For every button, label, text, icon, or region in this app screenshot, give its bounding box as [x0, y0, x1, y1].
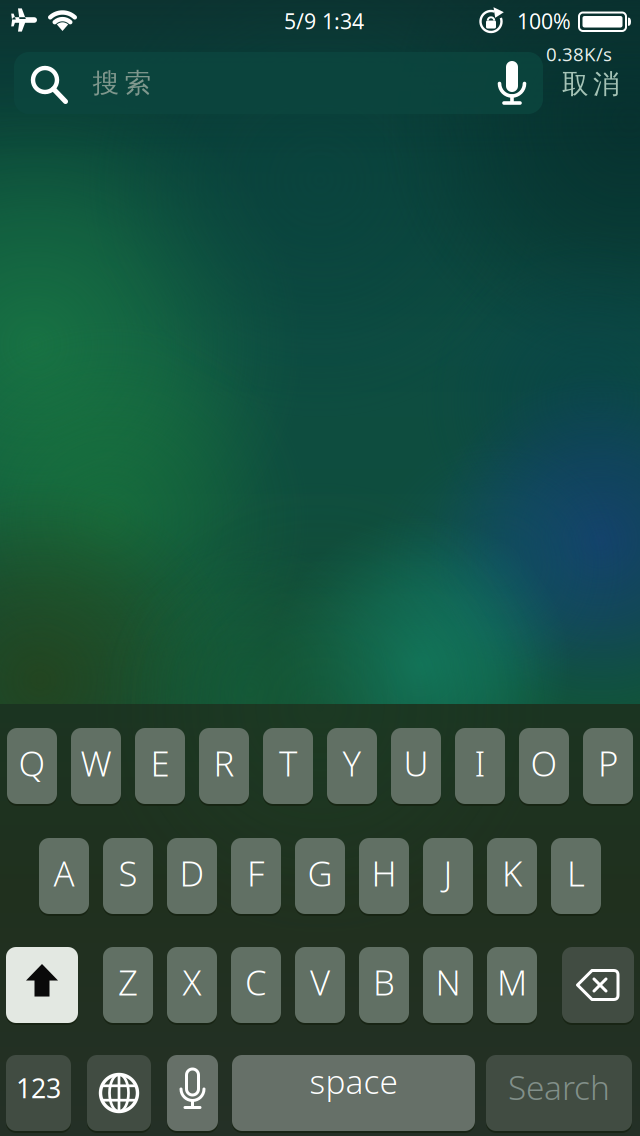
button[interactable]: V [295, 947, 345, 1023]
staticText: C [245, 959, 267, 1005]
staticText: Q [18, 740, 45, 786]
staticText: E [150, 740, 169, 786]
staticText: M [497, 959, 527, 1005]
button[interactable]: Delete [562, 947, 634, 1023]
staticText: P [598, 740, 618, 786]
button[interactable]: Shift [6, 947, 78, 1023]
button[interactable]: Search [486, 1055, 632, 1131]
staticText: S [118, 850, 137, 896]
button[interactable]: E [135, 728, 185, 804]
button[interactable]: P [583, 728, 633, 804]
staticText: U [403, 740, 428, 786]
staticText: Search [508, 1065, 610, 1109]
button[interactable]: Q [7, 728, 57, 804]
staticText: 5/9 1:34 [284, 7, 364, 35]
button[interactable]: J [423, 838, 473, 914]
button[interactable]: Numbers [6, 1055, 71, 1131]
button[interactable]: W [71, 728, 121, 804]
staticText: R [213, 740, 234, 786]
staticText: H [371, 850, 396, 896]
staticText: X [182, 959, 201, 1005]
button[interactable]: D [167, 838, 217, 914]
button[interactable]: T [263, 728, 313, 804]
button[interactable]: K [487, 838, 537, 914]
staticText: O [530, 740, 557, 786]
button[interactable]: U [391, 728, 441, 804]
button[interactable]: R [199, 728, 249, 804]
staticText: J [443, 850, 452, 896]
staticText: G [307, 850, 332, 896]
staticText: space [309, 1059, 397, 1103]
staticText: T [279, 740, 297, 786]
staticText: 0.38K/s [546, 42, 612, 66]
button[interactable]: Dictate [167, 1055, 218, 1131]
staticText: F [247, 850, 265, 896]
button[interactable]: A [39, 838, 89, 914]
button[interactable]: Z [103, 947, 153, 1023]
button[interactable]: M [487, 947, 537, 1023]
button[interactable]: Dictation [492, 59, 532, 109]
button[interactable]: C [231, 947, 281, 1023]
staticText: Z [118, 959, 138, 1005]
button[interactable]: space [232, 1055, 475, 1131]
staticText: 搜索 [92, 67, 151, 99]
staticText: 100% [517, 7, 571, 35]
staticText: D [179, 850, 204, 896]
staticText: B [373, 959, 395, 1005]
staticText: 123 [16, 1070, 61, 1106]
button[interactable]: F [231, 838, 281, 914]
staticText: V [310, 959, 330, 1005]
staticText: N [435, 959, 460, 1005]
button[interactable]: O [519, 728, 569, 804]
button[interactable]: I [455, 728, 505, 804]
button[interactable]: B [359, 947, 409, 1023]
staticText: K [502, 850, 522, 896]
button[interactable]: S [103, 838, 153, 914]
staticText: Y [342, 740, 361, 786]
button[interactable]: N [423, 947, 473, 1023]
button[interactable]: G [295, 838, 345, 914]
staticText: A [53, 850, 74, 896]
button[interactable]: Next keyboard [87, 1055, 151, 1131]
staticText: L [567, 850, 585, 896]
button[interactable]: 搜索 [14, 52, 543, 114]
button[interactable]: 取消 [536, 62, 640, 106]
button[interactable]: X [167, 947, 217, 1023]
staticText: 取消 [562, 68, 620, 100]
button[interactable]: L [551, 838, 601, 914]
button[interactable]: H [359, 838, 409, 914]
staticText: W [80, 740, 111, 786]
button[interactable]: Y [327, 728, 377, 804]
staticText: I [474, 740, 485, 786]
